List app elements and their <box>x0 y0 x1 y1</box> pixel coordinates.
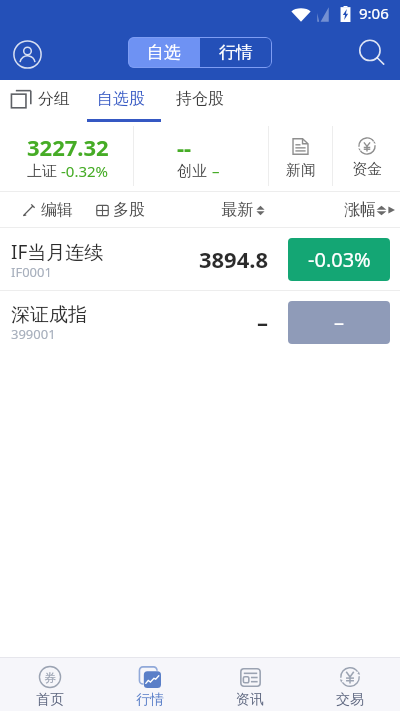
button[interactable]: 资讯 <box>200 658 300 711</box>
staticText: 分组 <box>38 89 70 109</box>
button[interactable]: 多股 <box>96 200 145 220</box>
button[interactable]: 自选股 <box>97 89 145 109</box>
button[interactable]: 持仓股 <box>176 89 224 109</box>
button[interactable]: 交易 <box>300 658 400 711</box>
staticText: – <box>212 161 220 181</box>
staticText: 行情 <box>136 691 164 709</box>
staticText: – <box>334 309 344 336</box>
staticText: -- <box>177 132 192 162</box>
staticText: 涨幅 <box>344 200 376 220</box>
staticText: 9:06 <box>359 3 389 23</box>
staticText: IF0001 <box>11 263 52 281</box>
staticText: 3227.32 <box>27 132 109 162</box>
button[interactable]: 行情 <box>100 658 200 711</box>
button[interactable]: 行情 <box>200 37 272 68</box>
button[interactable]: -- <box>134 121 268 191</box>
button[interactable]: Profile <box>6 33 49 76</box>
button[interactable]: 新闻 <box>269 121 332 191</box>
staticText: – <box>178 307 268 337</box>
button[interactable]: Search <box>352 33 392 73</box>
button[interactable]: 分组 <box>11 88 70 110</box>
button[interactable]: 涨幅 <box>344 200 396 220</box>
staticText: 交易 <box>336 691 364 709</box>
staticText: 多股 <box>113 200 145 220</box>
staticText: 新闻 <box>286 161 316 180</box>
staticText: 3894.8 <box>178 244 268 274</box>
staticText: 399001 <box>11 325 56 343</box>
staticText: 首页 <box>36 691 64 709</box>
staticText: 自选 <box>147 42 181 63</box>
button[interactable]: 最新 <box>221 200 265 220</box>
button[interactable]: 深证成指 <box>0 291 400 353</box>
staticText: 上证 <box>27 162 57 181</box>
button[interactable]: IF当月连续 <box>0 228 400 291</box>
staticText: -0.03% <box>308 246 371 273</box>
staticText: 资金 <box>352 160 382 179</box>
button[interactable]: 编辑 <box>22 200 73 220</box>
staticText: 编辑 <box>41 200 73 220</box>
staticText: 创业 <box>177 162 207 181</box>
button[interactable]: 券 <box>0 658 100 711</box>
staticText: -0.32% <box>61 161 109 181</box>
staticText: 资讯 <box>236 691 264 709</box>
staticText: 券 <box>44 670 56 685</box>
button[interactable]: 自选 <box>128 37 200 68</box>
button[interactable]: 资金 <box>333 121 400 191</box>
staticText: 深证成指 <box>11 303 87 327</box>
staticText: 最新 <box>221 200 253 220</box>
button[interactable]: 3227.32 <box>0 121 133 191</box>
staticText: 行情 <box>219 42 253 63</box>
staticText: IF当月连续 <box>11 239 104 265</box>
